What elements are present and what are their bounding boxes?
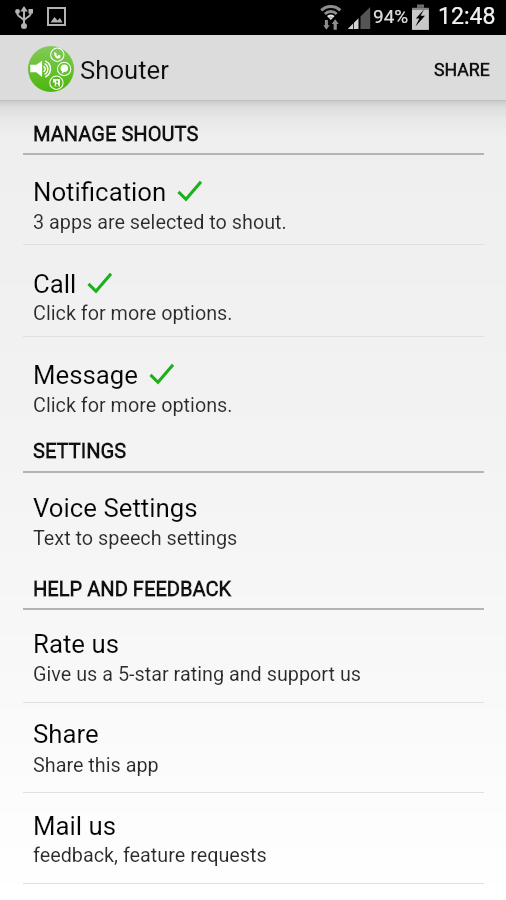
staticText: Voice Settings (33, 493, 198, 523)
staticText: Click for more options. (33, 302, 233, 325)
staticText: Click for more options. (33, 394, 233, 417)
staticText: Text to speech settings (33, 527, 238, 550)
staticText: Message (33, 360, 139, 390)
button[interactable] (0, 160, 506, 244)
staticText: Call (33, 269, 77, 299)
staticText: Share this app (33, 754, 159, 777)
staticText: 3 apps are selected to shout. (33, 211, 287, 234)
staticText: Share (33, 719, 99, 749)
staticText: Notification (33, 177, 167, 207)
staticText: Rate us (33, 629, 119, 659)
button[interactable] (0, 336, 506, 420)
staticText: feedback, feature requests (33, 844, 267, 867)
staticText: 12:48 (438, 3, 496, 30)
staticText: SHARE (434, 60, 490, 81)
staticText: 94% (373, 5, 409, 27)
button[interactable] (0, 792, 506, 884)
button[interactable] (0, 615, 506, 702)
staticText: Mail us (33, 811, 117, 841)
button[interactable] (0, 702, 506, 792)
staticText: Give us a 5-star rating and support us (33, 663, 362, 686)
button[interactable] (0, 244, 506, 336)
button[interactable] (0, 478, 506, 560)
staticText: HELP AND FEEDBACK (33, 577, 232, 601)
staticText: Shouter (80, 55, 169, 85)
staticText: SETTINGS (33, 439, 127, 463)
button[interactable]: SHARE (420, 35, 506, 100)
staticText: MANAGE SHOUTS (33, 122, 199, 146)
